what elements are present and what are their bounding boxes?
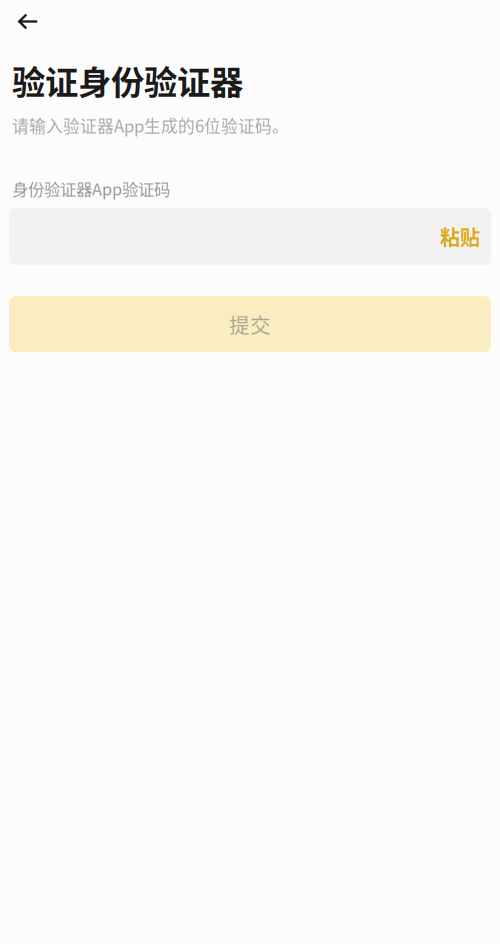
button[interactable]: 提交 [9, 296, 491, 352]
staticText: 验证身份验证器 [12, 56, 243, 104]
staticText: 提交 [229, 309, 271, 339]
staticText: 身份验证器App验证码 [12, 176, 170, 200]
button[interactable]: 身份验证器App验证码 [9, 208, 491, 265]
button[interactable]: Back [0, 0, 50, 41]
button[interactable]: 粘贴 [430, 214, 480, 259]
staticText: 请输入验证器App生成的6位验证码。 [12, 113, 289, 137]
staticText: 粘贴 [440, 222, 480, 251]
